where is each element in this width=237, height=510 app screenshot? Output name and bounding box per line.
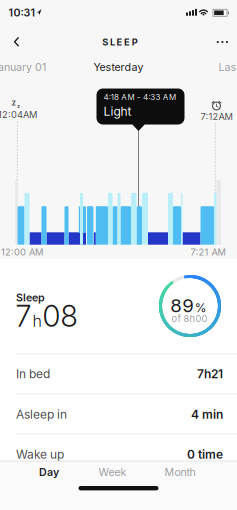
staticText: Wake up bbox=[16, 447, 64, 462]
staticText: Day bbox=[39, 466, 59, 478]
staticText: Week bbox=[98, 466, 126, 478]
staticText: of 8h00 bbox=[171, 313, 207, 324]
staticText: In bed bbox=[16, 367, 50, 381]
staticText: 7:21 AM bbox=[190, 246, 225, 257]
staticText: Month bbox=[164, 466, 195, 478]
staticText: 4:18 AM - 4:33 AM bbox=[103, 92, 176, 102]
staticText: h bbox=[32, 311, 41, 330]
staticText: January 01 bbox=[0, 61, 46, 73]
staticText: 10:31 bbox=[8, 6, 35, 19]
staticText: 12:00 AM bbox=[1, 246, 43, 257]
staticText: Last bbox=[218, 61, 237, 73]
staticText: z bbox=[11, 98, 16, 107]
staticText: Asleep in bbox=[16, 407, 67, 422]
staticText: 89 bbox=[170, 294, 194, 316]
staticText: Yesterday bbox=[93, 61, 143, 73]
staticText: 7 bbox=[15, 299, 31, 333]
staticText: Light bbox=[103, 104, 131, 119]
staticText: 12:04AM bbox=[0, 109, 37, 120]
staticText: SLEEP bbox=[102, 36, 138, 47]
staticText: 0 time bbox=[187, 447, 223, 462]
staticText: 7h21 bbox=[197, 367, 223, 381]
staticText: z bbox=[17, 103, 20, 109]
staticText: 7:12AM bbox=[200, 111, 232, 122]
staticText: 08 bbox=[42, 299, 77, 333]
staticText: Sleep bbox=[16, 291, 45, 304]
staticText: % bbox=[195, 301, 207, 315]
staticText: 4 min bbox=[191, 407, 223, 422]
